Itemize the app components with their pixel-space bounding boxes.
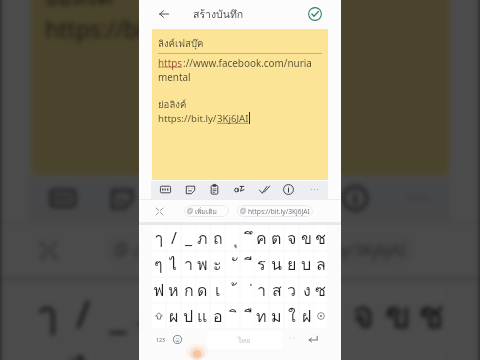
button[interactable]: กี bbox=[241, 252, 254, 276]
button[interactable]: ผ bbox=[167, 304, 180, 328]
button[interactable]: ก่ bbox=[241, 278, 254, 302]
button[interactable]: กุ bbox=[226, 226, 239, 250]
button[interactable]: ไ bbox=[167, 252, 180, 276]
button[interactable]: ๅ bbox=[152, 226, 165, 250]
button[interactable]: ก bbox=[182, 278, 195, 302]
button[interactable]: ไ bbox=[66, 347, 97, 360]
button[interactable]: เ bbox=[211, 278, 224, 302]
button[interactable]: ด bbox=[196, 278, 209, 302]
button[interactable]: Info bbox=[279, 180, 297, 199]
button[interactable]: GIF bbox=[156, 180, 174, 199]
button[interactable]: กึ bbox=[241, 226, 254, 250]
button[interactable]: ถ bbox=[171, 285, 202, 342]
button[interactable]: ม bbox=[270, 304, 283, 328]
button[interactable]: น bbox=[270, 252, 283, 276]
button[interactable]: ภ bbox=[135, 285, 166, 342]
button[interactable]: Info bbox=[333, 176, 375, 221]
button[interactable]: https://bit.ly/3Kj6JAI bbox=[237, 205, 313, 217]
button[interactable]: อ bbox=[211, 304, 224, 328]
button[interactable]: More options bbox=[305, 180, 323, 199]
button[interactable]: Translate bbox=[216, 176, 259, 221]
button[interactable]: กึ bbox=[242, 285, 273, 342]
button[interactable]: ข bbox=[382, 285, 413, 342]
button[interactable]: ฝ bbox=[300, 304, 313, 328]
button[interactable]: Back bbox=[155, 5, 173, 23]
button[interactable]: กิ bbox=[226, 304, 239, 328]
button[interactable]: ส bbox=[270, 278, 283, 302]
button[interactable]: ง bbox=[300, 278, 313, 302]
button[interactable]: กั bbox=[226, 252, 239, 276]
button[interactable]: ฟ bbox=[152, 278, 165, 302]
button[interactable]: ล bbox=[314, 252, 327, 276]
button[interactable]: น bbox=[311, 347, 342, 360]
button[interactable]: Backspace bbox=[314, 304, 327, 328]
button[interactable]: _ bbox=[182, 226, 195, 250]
button[interactable]: Save note bbox=[306, 5, 324, 23]
button[interactable]: ๅ bbox=[31, 285, 62, 342]
button[interactable]: ำ bbox=[182, 252, 195, 276]
button[interactable]: ช bbox=[416, 285, 447, 342]
button[interactable]: ไทย bbox=[207, 331, 282, 349]
button[interactable]: Checklist bbox=[255, 180, 273, 199]
button[interactable]: สร้างบันทึก bbox=[193, 5, 244, 23]
button[interactable]: ท bbox=[255, 304, 268, 328]
button[interactable]: พ bbox=[196, 252, 209, 276]
button[interactable]: Clipboard bbox=[157, 176, 200, 221]
button[interactable]: ๆ bbox=[152, 252, 165, 276]
button[interactable]: ก้ bbox=[226, 278, 239, 302]
button[interactable]: Expand clipboard bbox=[31, 233, 64, 266]
button[interactable]: เพิ่มเติม bbox=[107, 235, 214, 264]
button[interactable]: ใ bbox=[285, 304, 298, 328]
button[interactable]: ข bbox=[300, 226, 313, 250]
button[interactable]: / bbox=[66, 285, 97, 342]
button[interactable]: Shift bbox=[152, 304, 165, 328]
button[interactable]: เพิ่มเติม bbox=[184, 205, 229, 217]
button[interactable]: ะ bbox=[211, 252, 224, 276]
button[interactable]: ถ bbox=[211, 226, 224, 250]
button[interactable]: กื bbox=[241, 304, 254, 328]
button[interactable]: ป bbox=[182, 304, 195, 328]
button[interactable]: ค bbox=[276, 285, 306, 342]
button[interactable]: ค bbox=[255, 226, 268, 250]
button[interactable]: ว bbox=[285, 278, 298, 302]
button[interactable]: Sticker bbox=[100, 176, 143, 221]
button[interactable]: แ bbox=[196, 304, 209, 328]
button[interactable]: Translate bbox=[230, 180, 248, 199]
button[interactable]: ห bbox=[167, 278, 180, 302]
button[interactable]: ย bbox=[285, 252, 298, 276]
button[interactable]: Numbers bbox=[153, 332, 167, 346]
button[interactable]: จ bbox=[285, 226, 298, 250]
button[interactable]: กุ bbox=[207, 285, 238, 342]
button[interactable]: Clipboard bbox=[205, 180, 223, 199]
button[interactable]: ร bbox=[255, 252, 268, 276]
button[interactable]: จ bbox=[347, 285, 378, 342]
button[interactable]: Enter bbox=[305, 332, 321, 346]
button[interactable]: ะ bbox=[171, 347, 202, 360]
button[interactable]: บ bbox=[300, 252, 313, 276]
button[interactable]: ต bbox=[270, 226, 283, 250]
button[interactable]: ภ bbox=[196, 226, 209, 250]
button[interactable]: Sticker bbox=[181, 180, 199, 199]
button[interactable]: / bbox=[167, 226, 180, 250]
button[interactable]: _ bbox=[102, 285, 133, 342]
button[interactable]: GIF bbox=[40, 176, 83, 221]
button[interactable]: พ bbox=[135, 347, 166, 360]
button[interactable]: ต bbox=[311, 285, 342, 342]
button[interactable]: https://bit.ly/3Kj6JAI bbox=[233, 235, 413, 264]
button[interactable]: Expand clipboard bbox=[152, 204, 166, 218]
button[interactable]: า bbox=[255, 278, 268, 302]
button[interactable]: Emoji bbox=[170, 332, 184, 346]
button[interactable]: Checklist bbox=[276, 176, 318, 221]
button[interactable]: ซ bbox=[314, 278, 327, 302]
button[interactable]: ช bbox=[314, 226, 327, 250]
